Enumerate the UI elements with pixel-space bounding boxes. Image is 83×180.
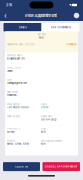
staticText: Sales Person bbox=[7, 91, 18, 93]
staticText: Sub Type bbox=[37, 33, 45, 36]
staticText: Scheduled bbox=[66, 43, 76, 46]
staticText: N/A bbox=[41, 142, 46, 145]
staticText: Products bbox=[7, 140, 15, 142]
staticText: Juned bbox=[7, 69, 12, 72]
staticText: Customer Name bbox=[7, 54, 22, 57]
staticText: ‹ bbox=[4, 11, 7, 20]
staticText: Follow up Date bbox=[7, 115, 20, 118]
staticText: View Appointment bbox=[24, 13, 56, 18]
staticText: CANCEL APPOINTMENT bbox=[45, 165, 78, 168]
button[interactable]: CLOCK IN bbox=[3, 162, 40, 171]
staticText: ◥ bbox=[69, 3, 71, 7]
button[interactable]: Back bbox=[2, 10, 9, 21]
staticText: Stage bbox=[41, 128, 46, 130]
button[interactable]: Add Comments bbox=[41, 23, 79, 31]
staticText: 08-04-2022 bbox=[41, 118, 56, 121]
staticText: Nilesh bbox=[7, 130, 14, 133]
staticText: MRN, CRM, SRN bbox=[7, 142, 29, 145]
staticText: Status bbox=[41, 103, 47, 106]
staticText: juned@bigcorsa.com bbox=[7, 81, 27, 84]
staticText: Contact Person bbox=[7, 67, 21, 69]
staticText: Add Comments bbox=[50, 26, 70, 29]
staticText: Appointment Date: 13/12/2021 bbox=[7, 43, 35, 46]
staticText: Details bbox=[18, 26, 26, 29]
staticText: Hasmikh bbox=[7, 94, 16, 97]
staticText: N/A bbox=[39, 36, 44, 39]
staticText: Active bbox=[41, 106, 48, 109]
staticText: Phone Number bbox=[7, 103, 20, 106]
staticText: CLOCK IN bbox=[15, 165, 28, 168]
staticText: 2:15 bbox=[6, 3, 12, 7]
staticText: Email bbox=[7, 79, 11, 81]
staticText: Transfered To bbox=[7, 128, 20, 130]
staticText: N/A bbox=[41, 130, 46, 133]
button[interactable]: Account bbox=[72, 10, 81, 21]
button[interactable]: CANCEL APPOINTMENT bbox=[42, 162, 80, 171]
staticText: Data Migration Required bbox=[41, 140, 62, 142]
staticText: Bigaorsa pvt ltd bbox=[7, 57, 24, 60]
staticText: +91 9XXX XXXX bbox=[7, 106, 29, 109]
button[interactable]: Details bbox=[3, 23, 41, 31]
staticText: Enquiry Date bbox=[41, 115, 52, 118]
